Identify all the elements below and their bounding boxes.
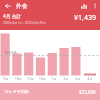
- staticText: 2月: [63, 77, 69, 81]
- staticText: 12ヶ月平均額: [4, 89, 29, 94]
- button[interactable]: More options: [89, 0, 100, 11]
- staticText: 12月: [39, 77, 46, 81]
- staticText: 2025年4月1日 - 2025年4月30日: [3, 21, 46, 25]
- staticText: 10月: [15, 77, 22, 81]
- staticText: ¥22,936: [5, 51, 17, 55]
- button[interactable]: 12ヶ月平均額: [0, 83, 100, 100]
- staticText: ¥1,439: [74, 13, 96, 23]
- button[interactable]: Chart: [78, 0, 89, 11]
- staticText: 9月: [3, 77, 9, 81]
- staticText: 3月: [75, 77, 81, 81]
- staticText: 4月: [87, 77, 93, 81]
- staticText: 1月: [51, 77, 57, 81]
- staticText: 11月: [27, 77, 34, 81]
- staticText: 外食: [16, 2, 28, 9]
- staticText: 4月 合計: [3, 13, 22, 20]
- staticText: ¥22,936: [79, 89, 96, 95]
- button[interactable]: Back: [2, 0, 13, 11]
